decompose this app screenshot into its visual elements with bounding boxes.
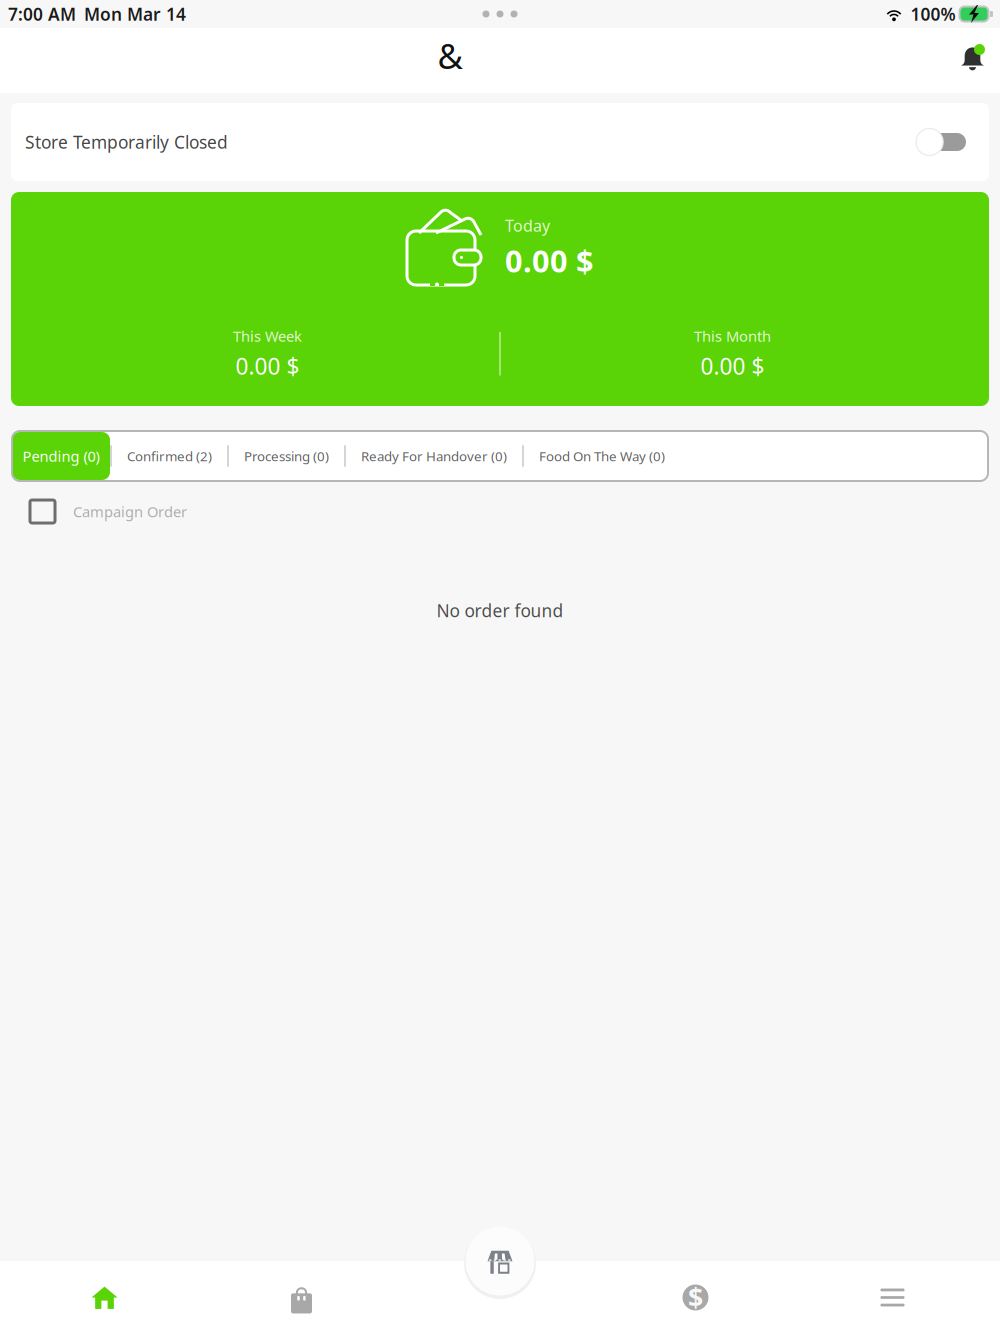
button[interactable]: Ready For Handover (0) — [346, 432, 522, 480]
button[interactable]: Earnings — [597, 1261, 794, 1334]
staticText: Today — [505, 215, 550, 236]
button[interactable]: Orders — [203, 1261, 400, 1334]
button[interactable]: Home — [6, 1261, 203, 1334]
button[interactable]: More — [794, 1261, 991, 1334]
button[interactable]: Campaign Order — [0, 491, 1000, 532]
staticText: 0.00 $ — [235, 351, 299, 381]
staticText: Ready For Handover (0) — [361, 447, 507, 465]
button[interactable]: Processing (0) — [229, 432, 344, 480]
button[interactable]: Notifications — [954, 38, 991, 82]
staticText: 7:00 AM — [8, 2, 76, 25]
button[interactable]: Store Temporarily Closed — [11, 103, 989, 181]
button[interactable]: Store — [465, 1226, 534, 1295]
staticText: No order found — [436, 599, 563, 622]
staticText: Processing (0) — [244, 447, 329, 465]
staticText: 0.00 $ — [505, 240, 594, 281]
button[interactable]: Confirmed (2) — [112, 432, 227, 480]
staticText: This Week — [233, 326, 302, 346]
staticText: $ — [688, 1280, 703, 1315]
staticText: Store Temporarily Closed — [25, 130, 228, 153]
staticText: Mon Mar 14 — [84, 2, 186, 25]
button[interactable]: Pending (0) — [12, 432, 110, 480]
staticText: Food On The Way (0) — [539, 447, 665, 465]
staticText: Pending (0) — [22, 446, 99, 466]
staticText: 0.00 $ — [700, 351, 764, 381]
staticText: & — [437, 32, 462, 78]
staticText: Confirmed (2) — [127, 447, 212, 465]
staticText: 100% — [910, 2, 955, 25]
staticText: This Month — [694, 326, 771, 346]
button[interactable]: Food On The Way (0) — [524, 432, 680, 480]
staticText: Campaign Order — [73, 502, 187, 521]
